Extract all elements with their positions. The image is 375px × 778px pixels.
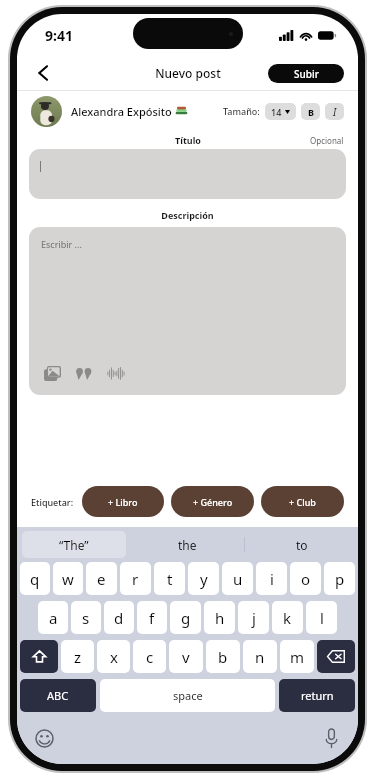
staticText: t	[167, 569, 173, 589]
staticText: h	[215, 608, 225, 628]
staticText: Alexandra Expósito	[71, 104, 172, 119]
button[interactable]: Shift	[20, 640, 58, 673]
button[interactable]: i	[256, 562, 287, 595]
staticText: + Género	[193, 496, 233, 508]
button[interactable]: ABC	[20, 679, 96, 712]
button[interactable]: b	[206, 640, 240, 673]
staticText: Subir	[294, 67, 319, 81]
button[interactable]: k	[272, 601, 303, 634]
staticText: b	[218, 647, 228, 667]
staticText: I	[333, 105, 337, 119]
staticText: 14	[271, 106, 282, 118]
staticText: z	[74, 647, 82, 667]
button[interactable]: + Género	[171, 486, 254, 517]
button[interactable]: Dictate	[318, 725, 344, 751]
staticText: space	[173, 688, 203, 703]
staticText: Nuevo post	[155, 65, 221, 81]
staticText: “The”	[59, 537, 89, 553]
staticText: y	[200, 569, 208, 589]
button[interactable]: g	[170, 601, 201, 634]
staticText: n	[255, 647, 265, 667]
button[interactable]: + Club	[261, 486, 344, 517]
staticText: r	[132, 569, 139, 589]
button[interactable]: Backspace	[317, 640, 355, 673]
staticText: p	[335, 569, 345, 589]
button[interactable]: Escribir ...	[29, 227, 346, 395]
button[interactable]: d	[104, 601, 134, 634]
button[interactable]: z	[61, 640, 94, 673]
staticText: o	[301, 569, 311, 589]
button[interactable]: f	[137, 601, 167, 634]
button[interactable]: Profile photo	[31, 96, 62, 127]
staticText: j	[252, 608, 256, 628]
staticText: s	[82, 608, 90, 628]
staticText: m	[290, 647, 305, 667]
button[interactable]: e	[86, 562, 117, 595]
button[interactable]: s	[71, 601, 101, 634]
button[interactable]: Add audio	[105, 362, 127, 384]
staticText: B	[308, 106, 314, 118]
button[interactable]: B	[301, 103, 320, 120]
button[interactable]: 14	[265, 103, 296, 120]
staticText: + Club	[289, 496, 316, 508]
staticText: Tamaño:	[223, 105, 260, 117]
button[interactable]: n	[243, 640, 277, 673]
button[interactable]: Add quote	[73, 362, 95, 384]
button[interactable]: to	[245, 531, 358, 558]
button[interactable]: Add image	[41, 362, 63, 384]
button[interactable]: + Libro	[82, 486, 164, 517]
button[interactable]	[29, 149, 346, 199]
staticText: k	[283, 608, 292, 628]
button[interactable]: x	[97, 640, 130, 673]
button[interactable]: t	[154, 562, 185, 595]
button[interactable]: r	[120, 562, 151, 595]
staticText: l	[320, 608, 324, 628]
staticText: Título	[175, 134, 201, 146]
staticText: d	[114, 608, 124, 628]
button[interactable]: c	[133, 640, 166, 673]
button[interactable]: o	[290, 562, 321, 595]
button[interactable]: I	[325, 103, 344, 120]
staticText: i	[270, 569, 274, 589]
staticText: w	[62, 569, 74, 589]
staticText: 9:41	[45, 26, 73, 45]
staticText: e	[97, 569, 106, 589]
button[interactable]: return	[279, 679, 355, 712]
button[interactable]: w	[53, 562, 83, 595]
staticText: Escribir ...	[41, 238, 82, 250]
button[interactable]: l	[306, 601, 337, 634]
button[interactable]: u	[222, 562, 253, 595]
button[interactable]: “The”	[22, 531, 126, 558]
button[interactable]: Back	[27, 57, 59, 89]
button[interactable]: h	[204, 601, 235, 634]
staticText: v	[182, 647, 190, 667]
button[interactable]: space	[100, 679, 275, 712]
staticText: Etiquetar:	[31, 496, 74, 508]
staticText: Opcional	[310, 135, 344, 146]
button[interactable]: y	[188, 562, 219, 595]
button[interactable]: v	[169, 640, 203, 673]
staticText: a	[49, 608, 58, 628]
staticText: f	[149, 608, 155, 628]
button[interactable]: q	[20, 562, 50, 595]
button[interactable]: a	[38, 601, 68, 634]
button[interactable]: the	[131, 531, 244, 558]
button[interactable]: p	[324, 562, 355, 595]
staticText: u	[233, 569, 243, 589]
staticText: the	[178, 537, 197, 553]
button[interactable]: m	[280, 640, 314, 673]
staticText: to	[296, 537, 308, 553]
staticText: c	[146, 647, 154, 667]
staticText: ABC	[47, 688, 69, 703]
staticText: x	[110, 647, 118, 667]
staticText: q	[30, 569, 40, 589]
button[interactable]: Emoji	[31, 725, 57, 751]
staticText: + Libro	[108, 496, 138, 508]
staticText: g	[181, 608, 191, 628]
button[interactable]: Subir	[268, 64, 344, 83]
button[interactable]: j	[238, 601, 269, 634]
staticText: return	[301, 688, 334, 703]
staticText: Descripción	[17, 209, 358, 221]
